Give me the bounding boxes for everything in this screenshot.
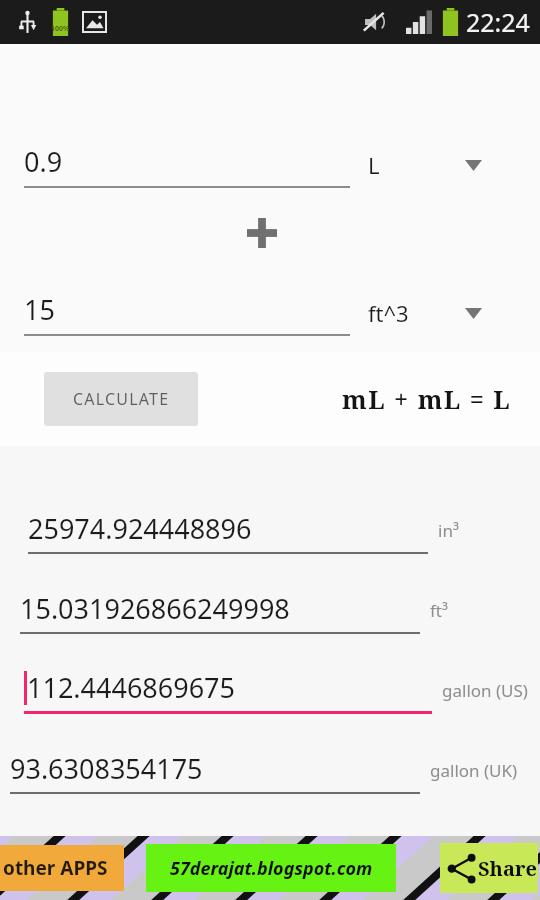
- staticText: 93.6308354175: [10, 750, 203, 787]
- button[interactable]: other APPS: [0, 845, 124, 891]
- staticText: CALCULATE: [73, 388, 170, 410]
- staticText: other APPS: [3, 855, 108, 881]
- button[interactable]: Advertisement banner: [0, 836, 540, 900]
- staticText: 57derajat.blogspot.com: [170, 856, 373, 881]
- button[interactable]: CALCULATE: [44, 372, 198, 426]
- staticText: L: [368, 150, 380, 180]
- button[interactable]: 25974.924448896: [28, 510, 428, 554]
- staticText: in³: [438, 519, 459, 542]
- button[interactable]: 15.031926866249998: [20, 590, 420, 634]
- staticText: 25974.924448896: [28, 510, 252, 547]
- staticText: 15.031926866249998: [20, 590, 290, 627]
- staticText: ft^3: [368, 298, 409, 328]
- staticText: mL + mL = L: [342, 382, 512, 416]
- button[interactable]: Select unit L: [368, 142, 540, 188]
- staticText: 0.9: [24, 143, 63, 180]
- staticText: gallon (UK): [430, 759, 518, 782]
- button[interactable]: Share: [440, 843, 538, 893]
- staticText: ft³: [430, 599, 448, 622]
- staticText: 112.4446869675: [27, 669, 236, 706]
- staticText: 15: [24, 291, 55, 328]
- staticText: Share: [478, 855, 537, 882]
- button[interactable]: 57derajat.blogspot.com: [146, 844, 396, 892]
- staticText: 22:24: [466, 5, 530, 39]
- button[interactable]: Select unit ft^3: [368, 290, 540, 336]
- button[interactable]: 93.6308354175: [10, 750, 420, 794]
- staticText: 100%: [51, 24, 70, 34]
- button[interactable]: 112.4446869675: [24, 669, 432, 714]
- staticText: gallon (US): [442, 679, 528, 702]
